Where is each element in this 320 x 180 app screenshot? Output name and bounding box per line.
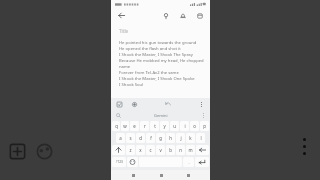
button[interactable]: j: [176, 133, 185, 143]
button[interactable]: Back: [128, 170, 138, 180]
button[interactable]: q: [112, 121, 120, 131]
button[interactable]: y: [160, 121, 169, 131]
staticText: I Shook the Master, I Shook One Spoke: [119, 76, 195, 82]
staticText: z: [129, 147, 132, 153]
staticText: f: [150, 135, 152, 141]
button[interactable]: More options: [298, 134, 311, 158]
staticText: b: [169, 147, 172, 153]
button[interactable]: f: [146, 133, 155, 143]
button[interactable]: Shift: [112, 145, 125, 155]
staticText: Forever from Tel-Av2 the same: [119, 70, 179, 76]
button[interactable]: Recents: [183, 170, 193, 180]
button[interactable]: Add: [7, 141, 28, 162]
button[interactable]: ?123: [112, 157, 126, 167]
staticText: Because He mobbed my head, He chopped my: [119, 58, 204, 64]
staticText: ?123: [116, 160, 123, 164]
staticText: w: [123, 123, 127, 129]
staticText: t: [154, 123, 156, 129]
staticText: d: [139, 135, 142, 141]
staticText: He opened the flash and shot it: [119, 46, 181, 52]
staticText: .: [188, 160, 190, 165]
button[interactable]: Undo: [163, 99, 173, 109]
staticText: u: [173, 123, 176, 129]
staticText: c: [149, 147, 152, 153]
button[interactable]: o: [190, 121, 199, 131]
staticText: I Shook Soul: [119, 82, 144, 88]
button[interactable]: s: [126, 133, 135, 143]
button[interactable]: r: [140, 121, 149, 131]
staticText: i: [184, 123, 186, 129]
button[interactable]: m: [186, 145, 195, 155]
button[interactable]: Reminder: [177, 10, 188, 21]
button[interactable]: Add attachment: [130, 100, 139, 109]
button[interactable]: More suggestions: [200, 111, 206, 119]
button[interactable]: Pin: [160, 10, 171, 21]
staticText: I Shook the Master, I Shook The Spray: [119, 52, 193, 58]
staticText: x: [139, 147, 142, 153]
staticText: Gemini: [154, 113, 168, 118]
staticText: o: [193, 123, 196, 129]
staticText: r: [144, 123, 146, 129]
button[interactable]: Checklist: [115, 100, 124, 109]
button[interactable]: p: [200, 121, 209, 131]
button[interactable]: x: [136, 145, 145, 155]
button[interactable]: Search: [115, 112, 122, 119]
button[interactable]: Keyboard options: [197, 99, 206, 109]
staticText: m: [188, 147, 193, 153]
button[interactable]: Enter: [195, 157, 209, 167]
staticText: He pointed his gun towards the ground: [119, 40, 197, 46]
button[interactable]: w: [121, 121, 129, 131]
staticText: n: [179, 147, 182, 153]
button[interactable]: d: [136, 133, 145, 143]
staticText: j: [180, 135, 182, 141]
button[interactable]: u: [170, 121, 179, 131]
button[interactable]: b: [166, 145, 175, 155]
button[interactable]: n: [176, 145, 185, 155]
button[interactable]: t: [150, 121, 159, 131]
button[interactable]: z: [126, 145, 135, 155]
button[interactable]: Palette: [34, 141, 55, 162]
button[interactable]: h: [166, 133, 175, 143]
button[interactable]: Emoji: [127, 157, 138, 167]
button[interactable]: g: [156, 133, 165, 143]
button[interactable]: i: [180, 121, 189, 131]
staticText: q: [115, 123, 118, 129]
staticText: g: [159, 135, 162, 141]
button[interactable]: e: [130, 121, 139, 131]
staticText: y: [163, 123, 166, 129]
staticText: s: [129, 135, 132, 141]
staticText: a: [119, 135, 122, 141]
staticText: l: [200, 135, 202, 141]
button[interactable]: Backspace: [196, 145, 209, 155]
staticText: name: [119, 64, 131, 70]
button[interactable]: c: [146, 145, 155, 155]
button[interactable]: Archive: [194, 10, 205, 21]
staticText: e: [133, 123, 136, 129]
staticText: k: [189, 135, 192, 141]
button[interactable]: Home: [156, 170, 166, 180]
button[interactable]: Back: [116, 10, 127, 21]
button[interactable]: k: [186, 133, 195, 143]
button[interactable]: v: [156, 145, 165, 155]
button[interactable]: l: [196, 133, 205, 143]
staticText: v: [159, 147, 162, 153]
staticText: p: [203, 123, 206, 129]
button[interactable]: a: [116, 133, 125, 143]
staticText: Title: [119, 28, 129, 34]
staticText: h: [169, 135, 172, 141]
